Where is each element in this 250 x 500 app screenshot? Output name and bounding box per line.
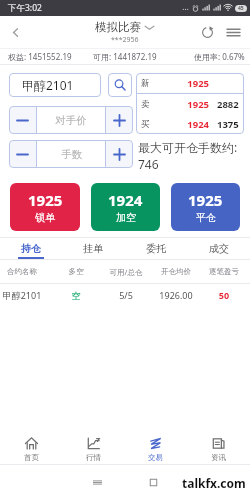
button[interactable]: 1924 [91,183,160,231]
staticText: 2882 [217,98,239,111]
button[interactable]: 持仓 [0,238,62,259]
staticText: 45 [238,5,244,12]
staticText: 平仓 [196,211,216,224]
staticText: 1375 [217,118,239,131]
button[interactable]: Search [108,73,132,97]
staticText: 多空 [44,267,108,276]
staticText: 对手价 [55,114,87,127]
staticText: 资讯 [211,453,226,462]
staticText: 1925 [28,190,63,210]
button[interactable]: Refresh [194,16,220,48]
staticText: 手数 [61,148,82,161]
staticText: 交易 [148,453,163,462]
button[interactable]: Increase [106,140,133,168]
staticText: 卖 [141,99,154,110]
staticText: 1925 [154,77,209,90]
button[interactable]: 挂单 [62,238,124,259]
staticText: 模拟比赛 [95,20,141,34]
staticText: 委托 [146,242,166,255]
button[interactable]: Back [0,16,30,48]
staticText: 锁单 [35,211,55,224]
button[interactable]: 甲醇2101 [9,73,101,97]
button[interactable]: Increase [106,106,133,134]
staticText: 可用: 1441872.19 [93,51,157,62]
button[interactable]: 资讯 [187,434,250,464]
staticText: 新 [141,78,154,89]
staticText: 50 [208,289,240,301]
button[interactable]: 委托 [124,238,187,259]
staticText: 权益: 1451552.19 [8,51,72,62]
staticText: 可用/总仓 [108,267,144,277]
staticText: 行情 [86,453,101,462]
button[interactable]: 交易 [124,434,187,464]
staticText: 逐笔盈亏 [208,267,240,276]
staticText: 1924 [154,118,209,131]
staticText: 1924 [108,190,143,210]
staticText: 1925 [188,190,223,210]
button[interactable]: 行情 [62,434,124,464]
staticText: 持仓 [21,242,41,255]
staticText: 首页 [24,453,39,462]
staticText: 空 [44,290,108,301]
staticText: 合约名称 [0,267,44,276]
staticText: 成交 [209,242,229,255]
button[interactable]: 甲醇2101 [0,284,250,306]
button[interactable]: Menu [220,16,246,48]
button[interactable]: 成交 [187,238,250,259]
staticText: 挂单 [83,242,103,255]
button[interactable]: Decrease [9,106,36,134]
staticText: 下午3:02 [8,2,42,14]
staticText: 5/5 [108,289,144,301]
staticText: 买 [141,119,154,130]
staticText: 甲醇2101 [22,77,74,93]
staticText: 加空 [116,211,136,224]
staticText: 开仓均价 [144,267,208,276]
staticText: 746 [138,156,159,172]
button[interactable]: 模拟比赛 [95,20,155,45]
staticText: ***2956 [111,35,139,45]
staticText: 最大可开仓手数约: [138,139,238,155]
staticText: 甲醇2101 [0,289,44,301]
staticText: 1925 [154,98,209,111]
button[interactable]: Decrease [9,140,36,168]
staticText: talkfx.com [182,475,246,491]
button[interactable]: 1925 [10,183,80,231]
staticText: 1926.00 [144,289,208,301]
staticText: 使用率: 0.67% [194,51,245,62]
button[interactable]: 首页 [0,434,62,464]
button[interactable]: 1925 [171,183,240,231]
